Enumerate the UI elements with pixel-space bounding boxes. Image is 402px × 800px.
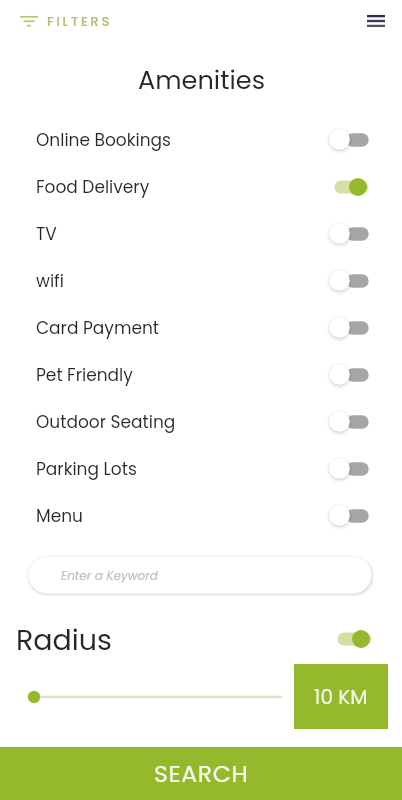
button[interactable]: Open navigation menu xyxy=(360,5,392,37)
button[interactable]: Outdoor Seating xyxy=(0,398,402,445)
button[interactable]: Card Payment xyxy=(0,304,402,351)
button[interactable]: Radius, on xyxy=(335,625,375,653)
button[interactable]: Menu, off xyxy=(332,502,372,530)
staticText: Radius xyxy=(16,620,112,660)
button[interactable]: Pet Friendly, off xyxy=(332,361,372,389)
staticText: 10 KM xyxy=(314,683,368,711)
staticText: wifi xyxy=(36,269,64,293)
staticText: Outdoor Seating xyxy=(36,410,176,434)
staticText: Card Payment xyxy=(36,316,160,340)
staticText: Menu xyxy=(36,504,83,528)
button[interactable]: Online Bookings, off xyxy=(332,126,372,154)
button[interactable]: Outdoor Seating, off xyxy=(332,408,372,436)
button[interactable]: Food Delivery xyxy=(0,163,402,210)
staticText: SEARCH xyxy=(154,757,249,790)
button[interactable]: Pet Friendly xyxy=(0,351,402,398)
button[interactable]: Menu xyxy=(0,492,402,539)
button[interactable]: Online Bookings xyxy=(0,116,402,163)
staticText: FILTERS xyxy=(47,12,113,30)
staticText: Parking Lots xyxy=(36,457,137,481)
staticText: Food Delivery xyxy=(36,175,150,199)
button[interactable]: TV, off xyxy=(332,220,372,248)
button[interactable]: Card Payment, off xyxy=(332,314,372,342)
button[interactable]: Food Delivery, on xyxy=(332,173,372,201)
staticText: Online Bookings xyxy=(36,128,171,152)
button[interactable]: Enter a Keyword xyxy=(28,556,372,594)
staticText: TV xyxy=(36,222,57,246)
button[interactable]: Parking Lots, off xyxy=(332,455,372,483)
button[interactable]: wifi xyxy=(0,257,402,304)
staticText: Pet Friendly xyxy=(36,363,133,387)
button[interactable]: Parking Lots xyxy=(0,445,402,492)
button[interactable]: 10 KM xyxy=(294,664,388,729)
button[interactable]: wifi, off xyxy=(332,267,372,295)
button[interactable]: TV xyxy=(0,210,402,257)
button[interactable]: Radius slider xyxy=(24,686,282,708)
staticText: Amenities xyxy=(138,62,265,94)
button[interactable]: FILTERS xyxy=(13,7,113,35)
button[interactable]: SEARCH xyxy=(0,747,402,800)
staticText: Enter a Keyword xyxy=(61,567,158,584)
